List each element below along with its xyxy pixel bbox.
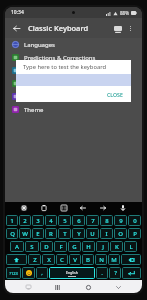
button[interactable]: 6 xyxy=(72,215,85,226)
button[interactable]: Z xyxy=(28,254,41,265)
button[interactable]: 0 xyxy=(128,215,141,226)
button[interactable]: G xyxy=(68,241,81,252)
staticText: . xyxy=(101,269,103,277)
button[interactable]: O xyxy=(114,228,127,239)
staticText: I xyxy=(105,230,108,238)
button[interactable]: 9 xyxy=(114,215,127,226)
button[interactable]: 4 xyxy=(45,215,57,226)
button[interactable]: Languages xyxy=(5,38,142,51)
button[interactable]: Test keyboard xyxy=(111,22,124,35)
button[interactable]: C xyxy=(56,254,68,265)
staticText: 7 xyxy=(91,217,95,225)
button[interactable]: S xyxy=(25,241,39,252)
button[interactable]: Keyboard Font xyxy=(5,77,142,90)
staticText: 1 xyxy=(10,217,14,225)
button[interactable]: P xyxy=(128,228,141,239)
button[interactable]: F xyxy=(54,241,67,252)
button[interactable]: Y xyxy=(72,228,85,239)
staticText: ? xyxy=(114,269,117,277)
button[interactable]: 5 xyxy=(58,215,71,226)
staticText: 0 xyxy=(133,217,137,225)
button[interactable]: Hide keyboard xyxy=(23,282,33,292)
button[interactable]: Backspace xyxy=(121,254,141,265)
staticText: W xyxy=(22,230,28,238)
staticText: , xyxy=(41,269,43,277)
button[interactable]: T xyxy=(58,228,71,239)
button[interactable]: V xyxy=(69,254,81,265)
staticText: O xyxy=(118,230,123,238)
button[interactable]: Enter xyxy=(122,267,141,279)
button[interactable]: R xyxy=(45,228,57,239)
button[interactable]: N xyxy=(95,254,107,265)
button[interactable]: Settings xyxy=(19,203,29,213)
staticText: B xyxy=(86,256,90,264)
button[interactable]: X xyxy=(42,254,55,265)
button[interactable]: K xyxy=(110,241,123,252)
staticText: Predictions & Corrections xyxy=(24,54,96,62)
button[interactable]: M xyxy=(108,254,120,265)
staticText: G xyxy=(72,243,77,251)
button[interactable]: More options xyxy=(124,22,137,35)
button[interactable]: Clipboard xyxy=(39,203,49,213)
button[interactable]: 8 xyxy=(100,215,113,226)
button[interactable]: B xyxy=(82,254,94,265)
staticText: X xyxy=(47,256,51,264)
staticText: U xyxy=(90,230,95,238)
staticText: Y xyxy=(77,230,81,238)
staticText: L xyxy=(129,243,133,251)
button[interactable]: Theme xyxy=(5,103,142,116)
button[interactable]: Shift xyxy=(6,254,27,265)
button[interactable]: I xyxy=(100,228,113,239)
button[interactable]: Move right xyxy=(98,203,108,213)
button[interactable]: 7 xyxy=(86,215,99,226)
staticText: 4 xyxy=(49,217,53,225)
button[interactable]: 1 xyxy=(6,215,18,226)
button[interactable]: English xyxy=(49,267,95,279)
button[interactable]: Home xyxy=(82,281,94,293)
button[interactable]: Recents xyxy=(51,281,63,293)
button[interactable]: Emoji xyxy=(22,267,35,279)
button[interactable]: CLOSE xyxy=(99,88,131,101)
button[interactable]: . xyxy=(96,267,108,279)
staticText: ?123 xyxy=(9,271,18,276)
staticText: Theme xyxy=(24,106,44,114)
button[interactable]: Back xyxy=(10,22,23,35)
button[interactable]: Move left xyxy=(78,203,88,213)
button[interactable]: Back xyxy=(112,281,124,293)
button[interactable]: Q xyxy=(6,228,18,239)
staticText: CLOSE xyxy=(107,91,123,98)
button[interactable]: Top/Bottom Rows xyxy=(5,90,142,103)
button[interactable]: D xyxy=(40,241,53,252)
staticText: K xyxy=(115,243,119,251)
staticText: 8 xyxy=(105,217,109,225)
button[interactable]: ? xyxy=(109,267,121,279)
button[interactable]: ?123 xyxy=(6,267,21,279)
button[interactable]: H xyxy=(82,241,95,252)
button[interactable]: 3 xyxy=(32,215,44,226)
button[interactable]: E xyxy=(32,228,44,239)
staticText: E xyxy=(36,230,40,238)
staticText: 88% xyxy=(120,10,129,16)
button[interactable]: J xyxy=(96,241,109,252)
staticText: Languages xyxy=(24,41,55,49)
staticText: 5 xyxy=(63,217,67,225)
staticText: Type here to test the keyboard xyxy=(23,63,106,71)
button[interactable]: Voice input xyxy=(118,203,128,213)
staticText: M xyxy=(111,256,117,264)
staticText: 10:34 xyxy=(11,9,24,16)
button[interactable]: L xyxy=(124,241,137,252)
button[interactable]: 2 xyxy=(19,215,31,226)
button[interactable]: Key Size xyxy=(5,64,142,77)
button[interactable]: U xyxy=(86,228,99,239)
button[interactable]: A xyxy=(10,241,24,252)
staticText: Key Size xyxy=(24,67,47,75)
staticText: English xyxy=(66,270,78,275)
button[interactable]: , xyxy=(36,267,48,279)
button[interactable]: Predictions & Corrections xyxy=(5,51,142,64)
staticText: P xyxy=(133,230,137,238)
button[interactable]: W xyxy=(19,228,31,239)
staticText: Q xyxy=(10,230,15,238)
button[interactable]: Layouts xyxy=(59,203,69,213)
staticText: V xyxy=(73,256,77,264)
